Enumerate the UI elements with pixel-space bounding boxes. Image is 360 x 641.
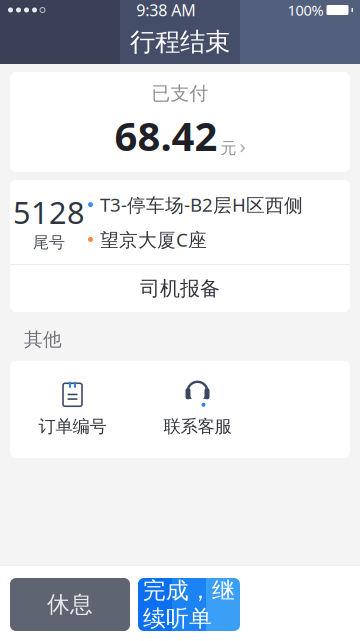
staticText: 元 — [220, 138, 236, 158]
button[interactable]: 完成，继续听单 — [138, 578, 240, 631]
staticText: 休息 — [47, 591, 93, 618]
button[interactable]: 休息 — [10, 578, 130, 631]
button[interactable]: 订单编号 — [10, 361, 135, 458]
staticText: 尾号 — [33, 232, 65, 252]
staticText: T3-停车场-B2层H区西侧 — [100, 192, 303, 217]
staticText: 订单编号 — [38, 416, 106, 437]
staticText: 完成，继续听单 — [143, 577, 235, 632]
staticText: › — [239, 132, 245, 159]
button[interactable]: 联系客服 — [135, 361, 260, 458]
staticText: 68.42 — [114, 109, 217, 162]
staticText: 望京大厦C座 — [100, 227, 207, 252]
staticText: 9:38 AM — [136, 0, 196, 21]
staticText: 行程结束 — [130, 26, 230, 57]
staticText: 其他 — [24, 328, 62, 351]
button[interactable]: 已支付 — [10, 72, 350, 172]
staticText: 100% — [287, 0, 323, 20]
staticText: 司机报备 — [140, 276, 220, 301]
button[interactable]: 司机报备 — [10, 265, 350, 312]
staticText: 已支付 — [151, 82, 208, 105]
staticText: 5128 — [13, 192, 85, 232]
staticText: 联系客服 — [163, 416, 231, 437]
